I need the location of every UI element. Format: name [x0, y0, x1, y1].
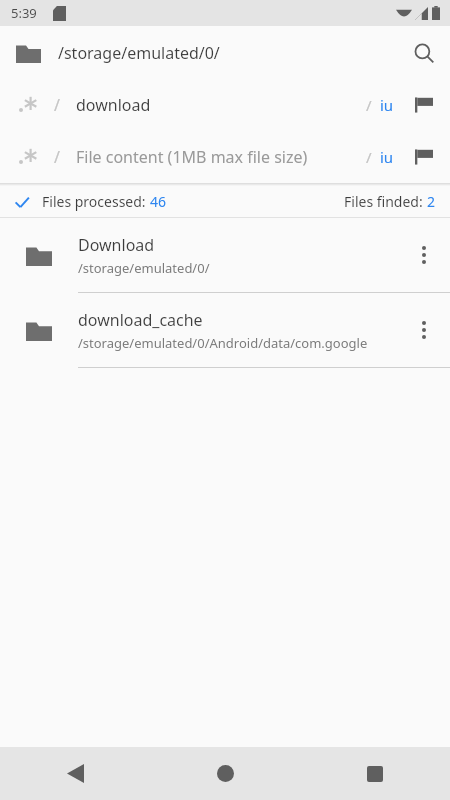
button[interactable]: iu	[380, 147, 394, 167]
button[interactable]: More options	[404, 306, 444, 354]
staticText: /	[366, 95, 372, 115]
button[interactable]: Back	[0, 747, 150, 800]
staticText: 5:39	[11, 4, 37, 22]
button[interactable]: Files processed:	[0, 186, 450, 217]
staticText: download_cache	[78, 309, 203, 331]
staticText: /	[366, 147, 372, 167]
staticText: Files finded:	[344, 192, 427, 211]
staticText: 2	[427, 192, 436, 211]
staticText: Files processed:	[42, 192, 150, 211]
staticText: iu	[380, 147, 394, 167]
staticText: download	[76, 94, 366, 116]
button[interactable]: Regex mode	[0, 79, 450, 131]
button[interactable]: Regex mode	[18, 146, 40, 168]
button[interactable]: More options	[404, 231, 444, 279]
staticText: /storage/emulated/0/	[58, 42, 400, 64]
staticText: File content (1MB max file size)	[76, 146, 366, 168]
button[interactable]: /storage/emulated/0/	[0, 26, 450, 79]
staticText: /	[54, 94, 60, 116]
button[interactable]: iu	[380, 95, 394, 115]
button[interactable]: Download	[0, 218, 450, 293]
button[interactable]: Search	[400, 29, 448, 77]
staticText: /	[54, 146, 60, 168]
button[interactable]: download_cache	[0, 293, 450, 368]
button[interactable]: Flags	[407, 88, 441, 122]
button[interactable]: Regex mode	[0, 131, 450, 183]
button[interactable]: Flags	[407, 140, 441, 174]
staticText: 46	[150, 192, 167, 211]
button[interactable]: Recent apps	[300, 747, 450, 800]
staticText: iu	[380, 95, 394, 115]
button[interactable]: Home	[150, 747, 300, 800]
staticText: Download	[78, 234, 155, 256]
staticText: /storage/emulated/0/Android/data/com.goo…	[78, 334, 368, 352]
button[interactable]: Regex mode	[18, 94, 40, 116]
staticText: /storage/emulated/0/	[78, 259, 210, 277]
